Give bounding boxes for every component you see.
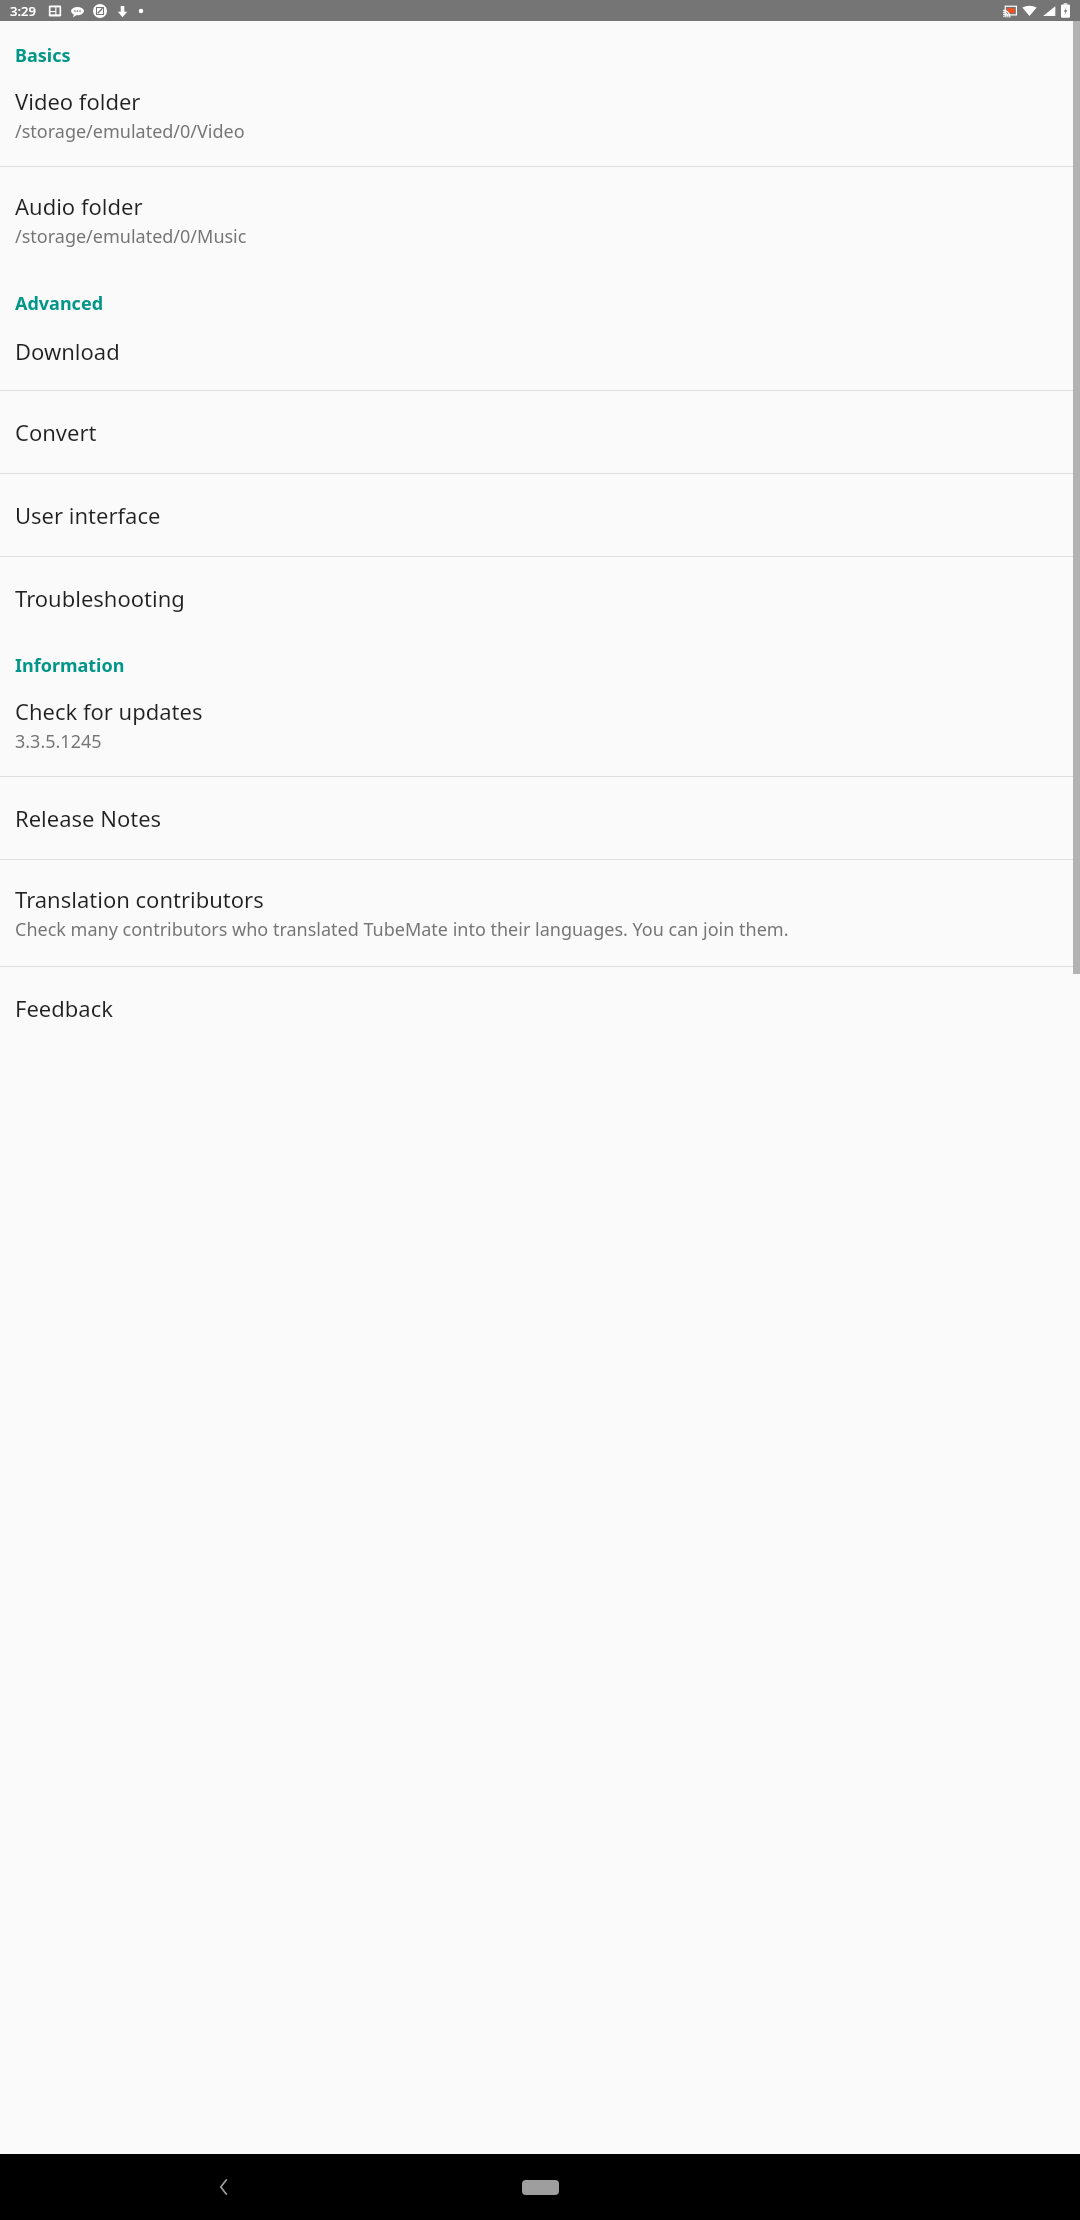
staticText: Basics xyxy=(15,43,71,68)
button[interactable]: Video folder xyxy=(0,80,1080,166)
button[interactable]: User interface xyxy=(0,474,1080,556)
button[interactable]: Audio folder xyxy=(0,167,1080,271)
staticText: Release Notes xyxy=(15,803,162,833)
button[interactable]: Home xyxy=(510,2172,570,2202)
staticText: User interface xyxy=(15,500,161,530)
staticText: Advanced xyxy=(15,291,104,316)
staticText: Video folder xyxy=(15,86,141,116)
staticText: /storage/emulated/0/Video xyxy=(15,119,245,144)
button[interactable]: Convert xyxy=(0,391,1080,473)
staticText: Translation contributors xyxy=(15,884,264,914)
staticText: Download xyxy=(15,336,120,366)
staticText: 3.3.5.1245 xyxy=(15,729,102,754)
staticText: Information xyxy=(15,653,125,678)
button[interactable]: Translation contributors xyxy=(0,860,1080,966)
button[interactable]: Troubleshooting xyxy=(0,557,1080,639)
staticText: 3:29 xyxy=(10,2,36,20)
button[interactable]: Download xyxy=(0,328,1080,390)
staticText: Convert xyxy=(15,417,97,447)
staticText: /storage/emulated/0/Music xyxy=(15,224,247,249)
button[interactable]: Feedback xyxy=(0,967,1080,1049)
staticText: Check many contributors who translated T… xyxy=(15,917,789,942)
staticText: Check for updates xyxy=(15,696,203,726)
staticText: Feedback xyxy=(15,993,113,1023)
staticText: Troubleshooting xyxy=(15,583,185,613)
button[interactable]: Back xyxy=(200,2163,248,2211)
staticText: Audio folder xyxy=(15,191,143,221)
button[interactable]: Check for updates xyxy=(0,690,1080,776)
button[interactable]: Release Notes xyxy=(0,777,1080,859)
